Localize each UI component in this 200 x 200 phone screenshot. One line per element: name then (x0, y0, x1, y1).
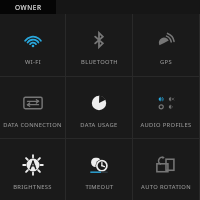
staticText: BRIGHTNESS (13, 183, 52, 191)
button[interactable]: Timeout (66, 139, 132, 200)
button[interactable]: Wi-Fi (0, 14, 65, 76)
button[interactable]: Data connection (0, 77, 65, 138)
staticText: AUDIO PROFILES (140, 121, 192, 129)
staticText: TIMEOUT (85, 183, 114, 191)
button[interactable]: GPS (133, 14, 199, 76)
staticText: WI-FI (25, 58, 41, 66)
staticText: DATA USAGE (80, 121, 118, 129)
staticText: GPS (160, 58, 172, 66)
button[interactable]: Data usage (66, 77, 132, 138)
button[interactable]: Brightness (0, 139, 65, 200)
staticText: AUTO ROTATION (141, 183, 191, 191)
staticText: OWNER (15, 3, 42, 12)
staticText: DATA CONNECTION (3, 121, 62, 129)
button[interactable]: OWNER (0, 0, 56, 14)
button[interactable]: Audio profiles (133, 77, 199, 138)
button[interactable]: Auto rotation (133, 139, 199, 200)
staticText: BLUETOOTH (81, 58, 118, 66)
button[interactable]: Bluetooth (66, 14, 132, 76)
